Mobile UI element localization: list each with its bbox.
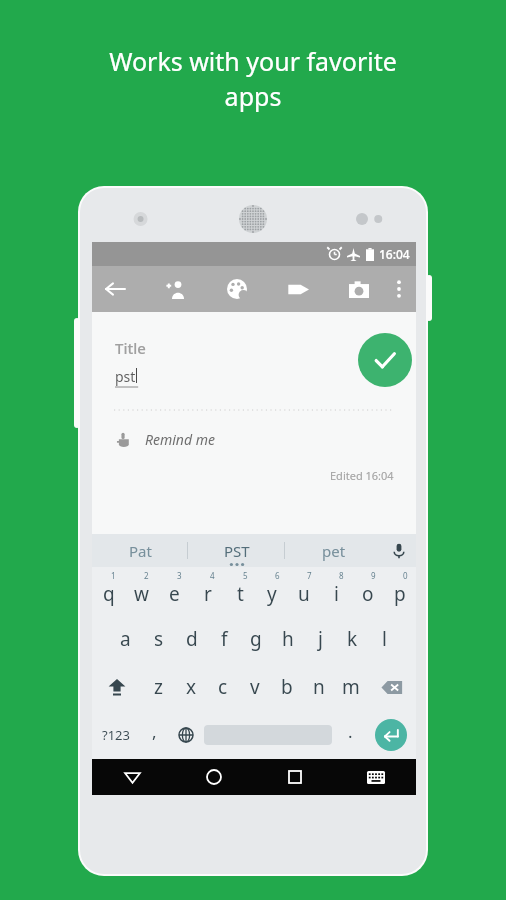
- staticText: Title: [115, 338, 146, 358]
- staticText: f: [221, 626, 228, 652]
- button[interactable]: x: [175, 663, 207, 711]
- staticText: d: [186, 626, 198, 652]
- button[interactable]: 5: [224, 567, 256, 615]
- staticText: n: [313, 674, 325, 700]
- button[interactable]: z: [142, 663, 175, 711]
- staticText: 6: [275, 570, 280, 581]
- button[interactable]: ,: [139, 711, 170, 759]
- button[interactable]: PST: [188, 534, 285, 567]
- staticText: 8: [339, 570, 344, 581]
- staticText: b: [281, 674, 293, 700]
- staticText: y: [267, 581, 277, 607]
- button[interactable]: Shift: [92, 663, 142, 711]
- button[interactable]: Backspace: [367, 663, 416, 711]
- button[interactable]: 3: [158, 567, 191, 615]
- staticText: q: [103, 581, 115, 607]
- button[interactable]: Camera: [336, 266, 382, 312]
- staticText: c: [218, 674, 228, 700]
- staticText: v: [250, 674, 260, 700]
- staticText: 5: [243, 570, 248, 581]
- staticText: w: [134, 581, 149, 607]
- button[interactable]: f: [208, 615, 240, 663]
- staticText: p: [394, 581, 406, 607]
- staticText: l: [382, 626, 387, 652]
- button[interactable]: c: [207, 663, 239, 711]
- staticText: pet: [322, 541, 346, 561]
- button[interactable]: ?123: [92, 711, 139, 759]
- button[interactable]: Back: [92, 266, 138, 312]
- button[interactable]: 0: [384, 567, 416, 615]
- button[interactable]: n: [303, 663, 335, 711]
- staticText: i: [334, 581, 339, 607]
- staticText: 7: [307, 570, 312, 581]
- button[interactable]: d: [175, 615, 208, 663]
- button[interactable]: 2: [125, 567, 158, 615]
- staticText: Pat: [129, 541, 152, 561]
- button[interactable]: 1: [92, 567, 125, 615]
- staticText: k: [347, 626, 358, 652]
- button[interactable]: a: [109, 615, 142, 663]
- button[interactable]: Enter: [366, 711, 416, 759]
- staticText: pst: [115, 367, 136, 386]
- staticText: 3: [177, 570, 182, 581]
- staticText: j: [318, 626, 323, 652]
- button[interactable]: v: [239, 663, 271, 711]
- button[interactable]: Add collaborator: [153, 266, 199, 312]
- staticText: r: [204, 581, 212, 607]
- staticText: 4: [210, 570, 215, 581]
- staticText: s: [154, 626, 164, 652]
- button[interactable]: 9: [352, 567, 384, 615]
- staticText: 16:04: [379, 246, 410, 262]
- staticText: g: [250, 626, 262, 652]
- button[interactable]: Keyboard switcher: [335, 759, 416, 795]
- staticText: 1: [111, 570, 116, 581]
- staticText: o: [362, 581, 374, 607]
- staticText: e: [169, 581, 180, 607]
- staticText: ,: [152, 720, 157, 743]
- button[interactable]: Back: [92, 759, 173, 795]
- staticText: PST: [224, 541, 250, 561]
- button[interactable]: Recent apps: [254, 759, 335, 795]
- button[interactable]: pet: [285, 534, 382, 567]
- button[interactable]: .: [335, 711, 366, 759]
- button[interactable]: j: [304, 615, 336, 663]
- button[interactable]: More options: [382, 266, 416, 312]
- staticText: ?123: [102, 726, 130, 744]
- button[interactable]: Pat: [92, 534, 188, 567]
- button[interactable]: Label: [275, 266, 321, 312]
- staticText: x: [186, 674, 197, 700]
- button[interactable]: Change language: [170, 711, 201, 759]
- button[interactable]: b: [271, 663, 303, 711]
- staticText: u: [298, 581, 310, 607]
- button[interactable]: Home: [173, 759, 254, 795]
- button[interactable]: m: [335, 663, 367, 711]
- staticText: Works with your favorite apps: [0, 44, 506, 114]
- staticText: a: [120, 626, 131, 652]
- button[interactable]: Change color: [214, 266, 260, 312]
- staticText: 9: [371, 570, 376, 581]
- staticText: t: [237, 581, 244, 607]
- staticText: 2: [144, 570, 149, 581]
- staticText: Edited 16:04: [330, 468, 394, 483]
- button[interactable]: h: [272, 615, 304, 663]
- button[interactable]: k: [336, 615, 368, 663]
- staticText: 0: [403, 570, 408, 581]
- staticText: h: [282, 626, 294, 652]
- button[interactable]: g: [240, 615, 272, 663]
- button[interactable]: Done: [358, 333, 412, 387]
- button[interactable]: Remind me: [116, 430, 215, 449]
- staticText: Remind me: [145, 430, 215, 449]
- staticText: m: [342, 674, 360, 700]
- button[interactable]: l: [368, 615, 400, 663]
- button[interactable]: 7: [288, 567, 320, 615]
- staticText: .: [348, 720, 353, 743]
- staticText: z: [154, 674, 163, 700]
- button[interactable]: Voice input: [382, 534, 416, 567]
- button[interactable]: 8: [320, 567, 352, 615]
- button[interactable]: s: [142, 615, 175, 663]
- button[interactable]: 4: [191, 567, 224, 615]
- button[interactable]: 6: [256, 567, 288, 615]
